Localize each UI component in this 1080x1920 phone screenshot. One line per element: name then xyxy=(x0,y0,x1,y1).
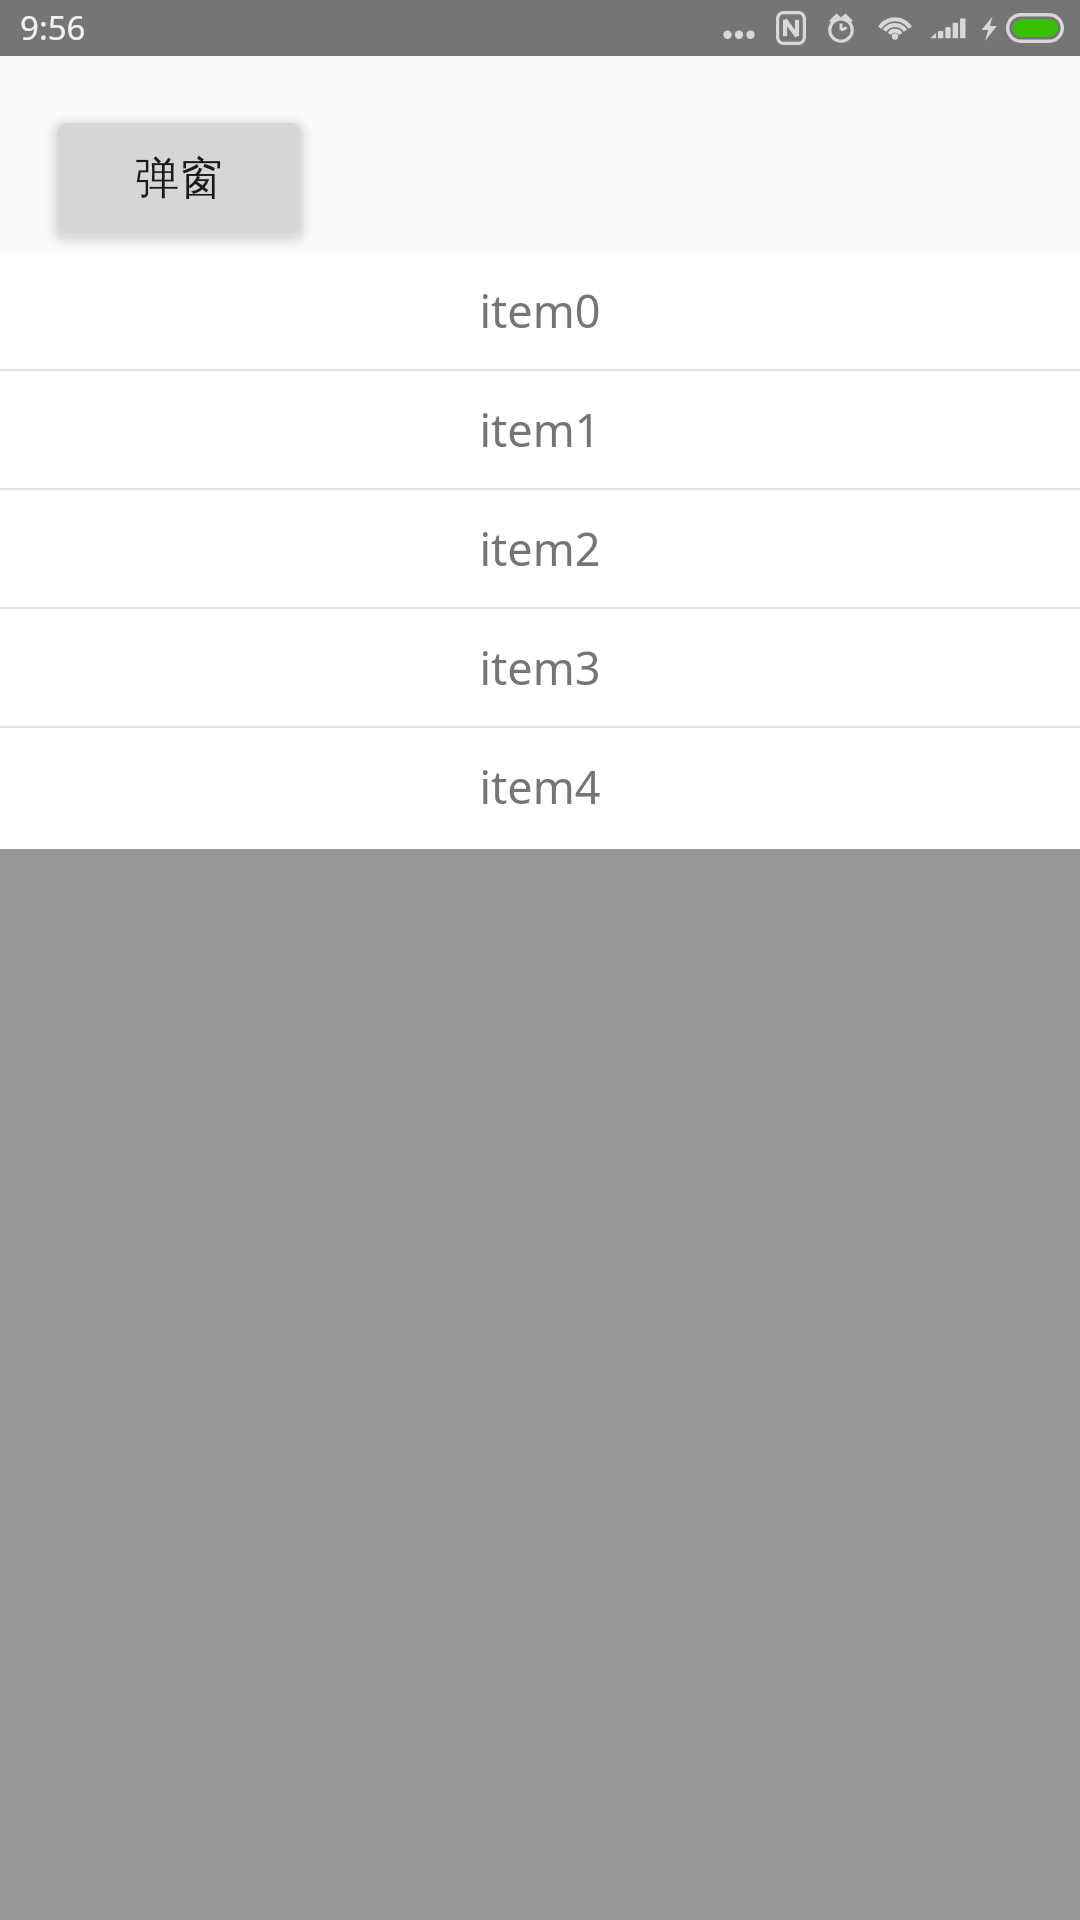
button[interactable]: item1 xyxy=(0,371,1080,488)
button[interactable]: item3 xyxy=(0,609,1080,726)
staticText: item0 xyxy=(479,280,601,341)
staticText: item4 xyxy=(479,756,601,817)
button[interactable]: item4 xyxy=(0,728,1080,845)
staticText: 9:56 xyxy=(20,5,86,50)
staticText: item2 xyxy=(479,518,601,579)
button[interactable]: item0 xyxy=(0,252,1080,369)
button[interactable]: 弹窗 xyxy=(58,123,300,234)
button[interactable]: item2 xyxy=(0,490,1080,607)
staticText: item1 xyxy=(479,399,601,460)
staticText: 弹窗 xyxy=(135,151,223,206)
staticText: item3 xyxy=(479,637,601,698)
